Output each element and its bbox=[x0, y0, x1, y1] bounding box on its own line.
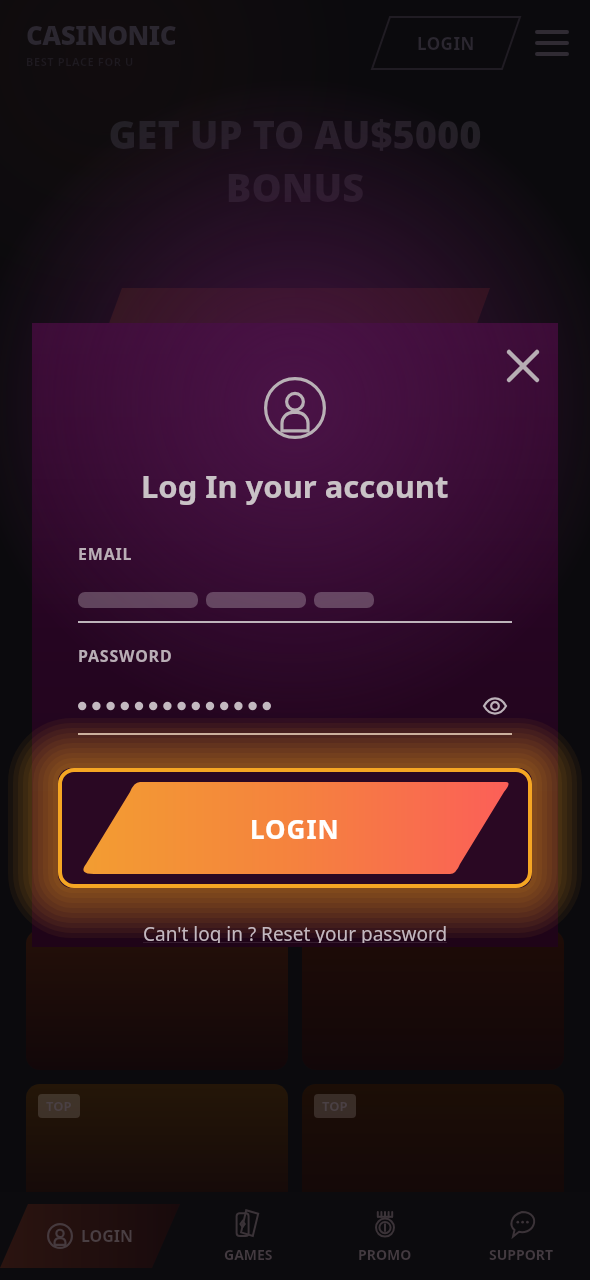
button[interactable]: Close bbox=[498, 341, 548, 391]
button[interactable]: Can't log in ? Reset your password bbox=[133, 917, 458, 947]
button[interactable]: SUPPORT bbox=[453, 1203, 590, 1270]
staticText: Log In your account bbox=[141, 465, 449, 507]
button[interactable]: Show password bbox=[478, 689, 512, 723]
button[interactable]: GAMES bbox=[180, 1203, 316, 1270]
staticText: BEST PLACE FOR U bbox=[26, 54, 134, 69]
button[interactable]: LOGIN bbox=[58, 768, 532, 888]
staticText: LOGIN bbox=[417, 32, 475, 55]
button[interactable]: LOGIN bbox=[372, 17, 520, 69]
button[interactable]: PROMO bbox=[316, 1203, 453, 1270]
staticText: EMAIL bbox=[78, 543, 133, 565]
staticText: LOGIN bbox=[81, 1225, 134, 1247]
staticText: PASSWORD bbox=[78, 645, 173, 667]
button[interactable]: Casinonic home bbox=[26, 17, 177, 69]
staticText: LOGIN bbox=[250, 811, 340, 846]
staticText: TOP bbox=[46, 1097, 72, 1115]
button[interactable]: Menu bbox=[530, 21, 574, 65]
staticText: GET UP TO AU$5000 BONUS bbox=[108, 108, 482, 214]
button[interactable]: Game bbox=[26, 930, 288, 1070]
button[interactable]: LOGIN bbox=[0, 1204, 180, 1268]
button[interactable]: Game bbox=[26, 1084, 288, 1224]
staticText: TOP bbox=[322, 1097, 348, 1115]
staticText: SUPPORT bbox=[489, 1245, 554, 1264]
staticText: Can't log in ? Reset your password bbox=[143, 921, 448, 943]
staticText: GAMES bbox=[224, 1245, 273, 1264]
button[interactable]: Game bbox=[302, 1084, 564, 1224]
staticText: CASINONIC bbox=[26, 17, 177, 52]
staticText: PROMO bbox=[358, 1245, 412, 1264]
button[interactable]: Game bbox=[302, 930, 564, 1070]
